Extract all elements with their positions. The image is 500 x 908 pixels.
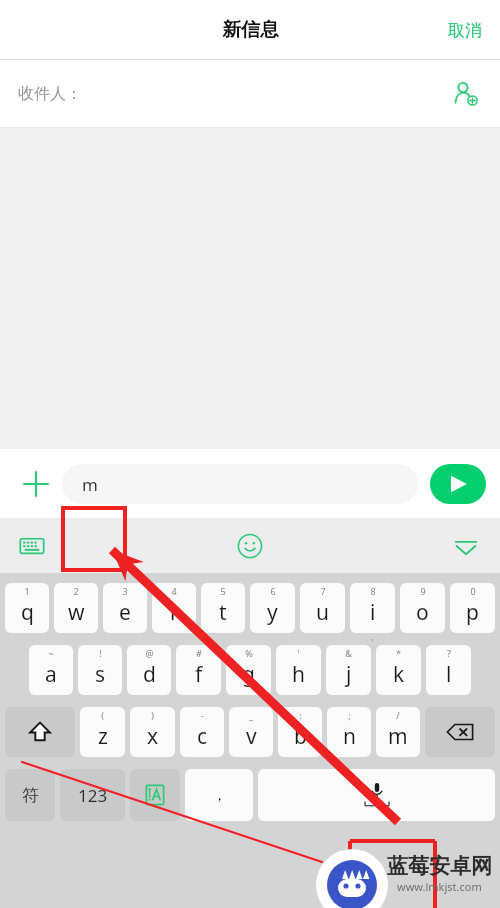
button[interactable]: Add attachment [10, 458, 62, 510]
button[interactable]: % [226, 645, 271, 695]
staticText: i [370, 598, 376, 627]
staticText: o [416, 598, 429, 627]
staticText: n [343, 722, 356, 751]
button[interactable]: - [180, 707, 224, 757]
staticText: ! [99, 647, 102, 659]
staticText: _ [249, 709, 253, 721]
button[interactable]: ) [130, 707, 175, 757]
button[interactable]: 2 [54, 583, 98, 633]
staticText: p [466, 598, 479, 627]
button[interactable]: Keyboard [8, 522, 56, 570]
staticText: a [45, 660, 57, 689]
button[interactable]: Send [430, 464, 486, 504]
button[interactable]: ! [78, 645, 122, 695]
staticText: 取消 [448, 20, 482, 41]
staticText: m [388, 722, 408, 751]
staticText: - [201, 709, 204, 721]
staticText: b [294, 722, 307, 751]
staticText: 7 [320, 585, 326, 597]
button[interactable]: 符 [5, 769, 55, 821]
staticText: ' [297, 647, 300, 659]
staticText: % [245, 647, 253, 659]
button[interactable]: # [176, 645, 221, 695]
staticText: 新信息 [222, 18, 279, 42]
button[interactable]: 取消 [430, 6, 500, 55]
staticText: y [267, 598, 278, 627]
staticText: f [195, 660, 203, 689]
staticText: c [197, 722, 208, 751]
button[interactable]: 8 [350, 583, 395, 633]
staticText: 2 [73, 585, 79, 597]
staticText: & [345, 647, 352, 659]
staticText: q [21, 598, 34, 627]
button[interactable]: : [278, 707, 322, 757]
button[interactable]: 123 [60, 769, 125, 821]
button[interactable]: Add contact [442, 70, 490, 118]
staticText: 1 [24, 585, 30, 597]
staticText: e [119, 598, 131, 627]
button[interactable]: Hide keyboard [442, 522, 490, 570]
staticText: d [143, 660, 156, 689]
staticText: ? [447, 647, 451, 659]
staticText: s [95, 660, 106, 689]
staticText: g [242, 660, 255, 689]
staticText: 3 [122, 585, 128, 597]
staticText: 5 [220, 585, 226, 597]
button[interactable]: Backspace [425, 707, 495, 757]
button[interactable]: ? [426, 645, 471, 695]
staticText: www.lmkjst.com [397, 879, 482, 894]
staticText: 4 [171, 585, 177, 597]
staticText: # [196, 647, 202, 659]
staticText: 蓝莓安卓网 [387, 853, 492, 879]
staticText: 收件人： [18, 84, 82, 104]
button[interactable]: 4 [152, 583, 196, 633]
staticText: j [346, 660, 352, 689]
button[interactable]: 3 [103, 583, 147, 633]
staticText: v [246, 722, 257, 751]
button[interactable]: ~ [29, 645, 73, 695]
button[interactable]: 6 [250, 583, 295, 633]
staticText: 符 [22, 785, 39, 806]
button[interactable]: ， [185, 769, 253, 821]
staticText: @ [145, 647, 154, 659]
button[interactable]: _ [229, 707, 273, 757]
staticText: r [170, 598, 179, 627]
staticText: 6 [270, 585, 276, 597]
staticText: w [68, 598, 85, 627]
staticText: z [98, 722, 108, 751]
staticText: / [396, 709, 400, 721]
button[interactable]: * [376, 645, 421, 695]
button[interactable]: 9 [400, 583, 445, 633]
staticText: l [446, 660, 452, 689]
button[interactable]: & [326, 645, 371, 695]
button[interactable]: ; [327, 707, 371, 757]
staticText: : [299, 709, 302, 721]
staticText: t [219, 598, 227, 627]
button[interactable]: 7 [300, 583, 345, 633]
staticText: 9 [420, 585, 426, 597]
staticText: ; [348, 709, 351, 721]
staticText: 8 [370, 585, 376, 597]
button[interactable]: Emoji [226, 522, 274, 570]
button[interactable]: 1 [5, 583, 49, 633]
staticText: u [316, 598, 329, 627]
staticText: ) [151, 709, 154, 721]
button[interactable]: 0 [450, 583, 495, 633]
staticText: x [147, 722, 159, 751]
button[interactable]: ' [276, 645, 321, 695]
staticText: ， [212, 786, 227, 805]
staticText: 0 [470, 585, 476, 597]
staticText: m [82, 473, 98, 496]
staticText: h [292, 660, 305, 689]
button[interactable]: m [62, 464, 418, 504]
staticText: ~ [48, 647, 54, 659]
button[interactable]: Shift [5, 707, 75, 757]
button[interactable]: ( [80, 707, 125, 757]
button[interactable]: 5 [201, 583, 245, 633]
button[interactable]: @ [127, 645, 171, 695]
button[interactable]: Language [130, 769, 180, 821]
staticText: 123 [78, 784, 108, 807]
button[interactable]: / [376, 707, 420, 757]
button[interactable]: Space / voice [258, 769, 495, 821]
staticText: * [396, 647, 401, 659]
